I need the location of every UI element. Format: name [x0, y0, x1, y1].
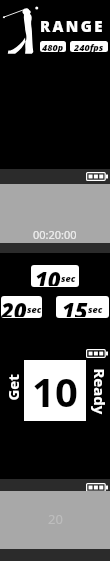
staticText: 20: [48, 510, 63, 528]
staticText: Get: [2, 373, 21, 400]
other: Battery: [86, 483, 108, 492]
staticText: 10: [35, 265, 61, 286]
other: Battery: [86, 349, 108, 358]
staticText: 10: [32, 364, 78, 418]
button[interactable]: 240fps: [70, 41, 108, 52]
staticText: RANGE: [40, 16, 105, 36]
staticText: sec: [27, 303, 42, 315]
staticText: 20: [1, 296, 27, 317]
staticText: Ready: [90, 368, 109, 414]
other: Battery: [86, 172, 108, 181]
staticText: 480p: [42, 41, 64, 52]
button[interactable]: 10: [31, 265, 79, 287]
staticText: 15: [62, 296, 88, 317]
button[interactable]: Ready: [90, 361, 109, 421]
staticText: 00:20:00: [33, 227, 77, 242]
button[interactable]: 480p: [40, 41, 66, 52]
button[interactable]: 20: [1, 296, 42, 318]
staticText: sec: [61, 272, 76, 284]
button[interactable]: 15: [56, 296, 109, 318]
button[interactable]: Get: [2, 367, 21, 407]
staticText: 240fps: [74, 41, 104, 52]
button[interactable]: 10: [24, 360, 86, 421]
staticText: sec: [88, 303, 103, 315]
